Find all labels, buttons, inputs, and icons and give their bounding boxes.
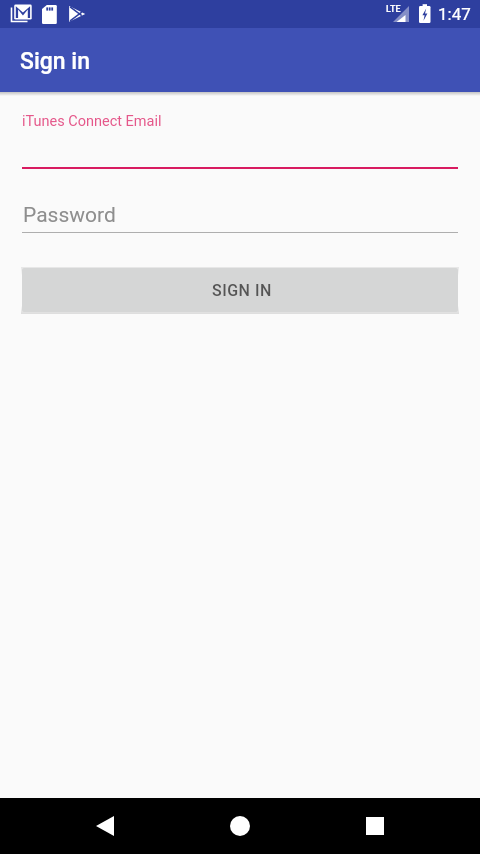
staticText: LTE	[386, 4, 401, 15]
button[interactable]: Back	[69, 798, 141, 854]
button[interactable]: Home	[204, 798, 276, 854]
staticText: Password	[23, 203, 116, 228]
button[interactable]: Recent apps	[339, 798, 411, 854]
staticText: SIGN IN	[212, 281, 272, 300]
button[interactable]: Password	[0, 196, 480, 236]
button[interactable]: SIGN IN	[22, 268, 458, 312]
button[interactable]: iTunes Connect Email	[0, 104, 480, 170]
staticText: 1:47	[438, 4, 471, 24]
staticText: Sign in	[20, 48, 91, 75]
staticText: iTunes Connect Email	[22, 113, 162, 130]
